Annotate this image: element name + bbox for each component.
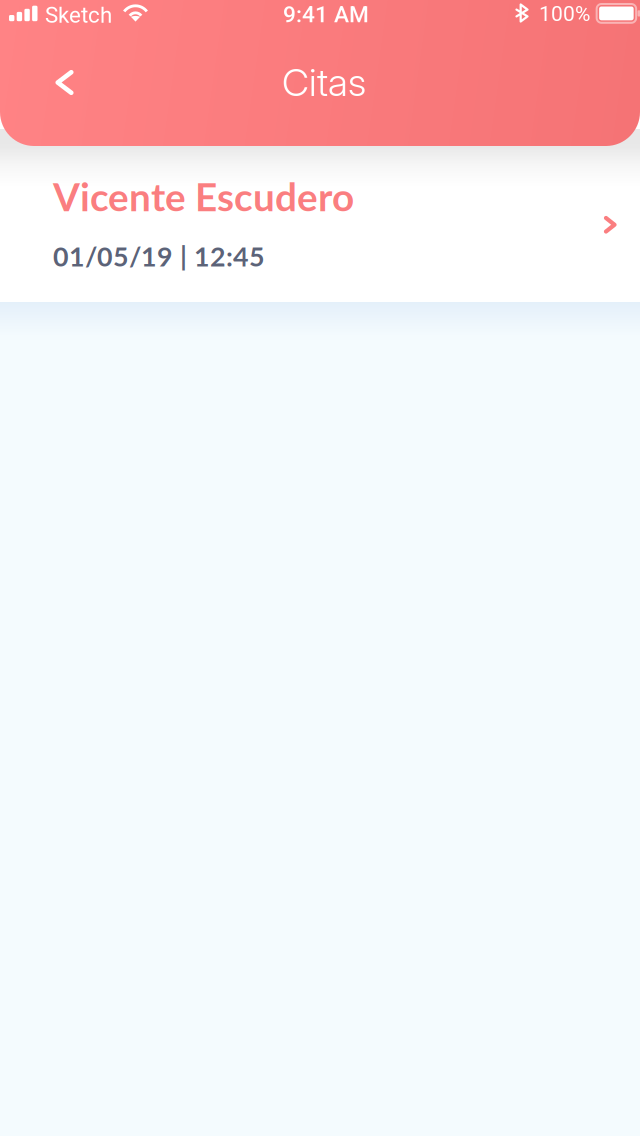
button[interactable]: Back: [33, 51, 95, 113]
staticText: Sketch: [45, 2, 112, 28]
staticText: 100%: [539, 1, 590, 26]
staticText: Citas: [282, 59, 366, 105]
button[interactable]: Vicente Escudero: [0, 112, 640, 302]
staticText: 01/05/19 | 12:45: [53, 240, 265, 272]
staticText: 9:41 AM: [283, 1, 369, 28]
staticText: Vicente Escudero: [53, 173, 354, 219]
